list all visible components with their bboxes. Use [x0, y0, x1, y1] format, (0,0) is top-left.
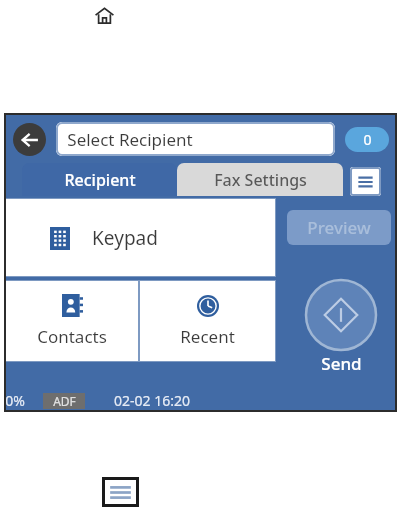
staticText: Send [321, 352, 362, 375]
button[interactable]: Recent [139, 280, 276, 362]
button[interactable]: Home [90, 1, 118, 29]
button[interactable]: Select Recipient [56, 122, 335, 156]
button[interactable]: Contacts [4, 280, 139, 362]
button[interactable]: Menu [105, 480, 136, 504]
button[interactable]: Recipient [22, 163, 177, 196]
button[interactable]: Preview [287, 210, 391, 245]
staticText: 0% [5, 391, 25, 410]
staticText: Fax Settings [214, 169, 307, 191]
button[interactable]: Fax Settings [177, 163, 343, 196]
staticText: Keypad [92, 225, 158, 251]
button[interactable]: Send [304, 278, 378, 352]
staticText: Recipient [64, 169, 136, 191]
button[interactable]: Keypad [4, 198, 276, 277]
staticText: Preview [307, 216, 371, 239]
staticText: Recent [180, 325, 235, 348]
button[interactable]: Back [13, 123, 46, 156]
button[interactable]: 0 [345, 127, 389, 152]
button[interactable]: Menu [350, 167, 381, 196]
staticText: ADF [53, 393, 76, 409]
staticText: Contacts [37, 325, 107, 348]
staticText: 0 [363, 130, 372, 149]
staticText: Select Recipient [67, 128, 193, 151]
staticText: 02-02 16:20 [114, 391, 190, 410]
